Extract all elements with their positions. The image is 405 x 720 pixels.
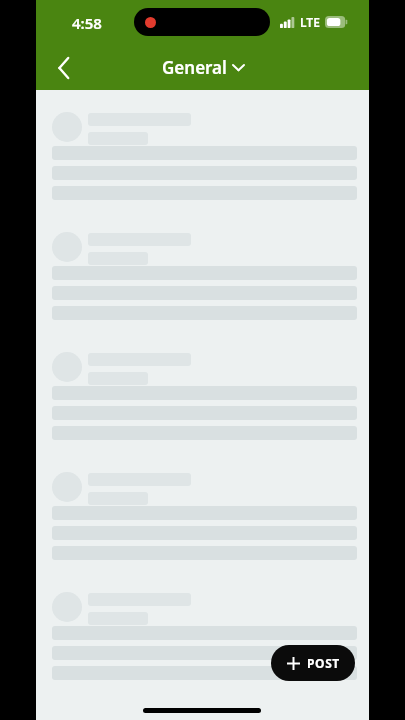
button[interactable]: POST <box>271 645 355 681</box>
button[interactable] <box>36 220 369 330</box>
staticText: LTE <box>300 14 320 30</box>
button[interactable]: General <box>154 52 252 83</box>
staticText: 4:58 <box>72 13 102 33</box>
button[interactable] <box>36 580 369 690</box>
button[interactable] <box>36 460 369 570</box>
button[interactable] <box>36 340 369 450</box>
staticText: POST <box>307 655 340 671</box>
button[interactable] <box>36 100 369 210</box>
button[interactable]: Back <box>42 46 86 90</box>
staticText: General <box>162 56 227 79</box>
